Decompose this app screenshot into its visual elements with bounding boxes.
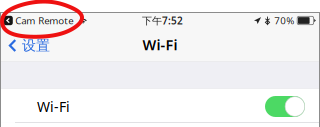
staticText: 下午7:52 [142,14,183,27]
button[interactable]: 设置 [0,35,50,54]
staticText: 70% [274,14,294,27]
button[interactable]: Wi-Fi [0,88,320,122]
staticText: Wi-Fi [142,35,177,54]
button[interactable]: Cam Remote [0,14,73,27]
staticText: Cam Remote [15,14,73,27]
staticText: Wi-Fi [37,97,70,116]
staticText: 设置 [22,37,50,54]
